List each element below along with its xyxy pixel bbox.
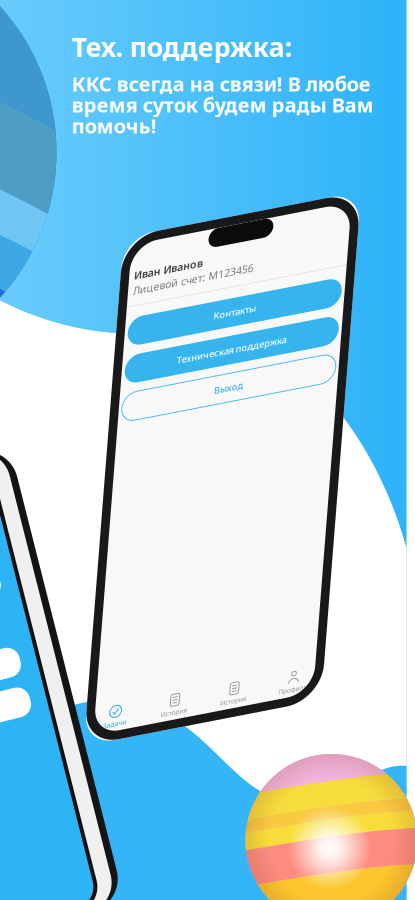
staticText: Контакты (91, 92, 134, 104)
staticText: Техническая поддержка (56, 130, 168, 142)
button[interactable]: Выход (3, 159, 221, 188)
staticText: Лицевой счет: M123456 (5, 49, 128, 63)
staticText: Иван Иванов (5, 34, 75, 48)
button[interactable]: Задачи (0, 475, 52, 498)
staticText: помочь! (71, 112, 156, 139)
staticText: ККС всегда на связи! В любое (71, 70, 370, 97)
staticText: Тех. поддержка: (71, 29, 291, 64)
button[interactable]: Контакты (3, 83, 221, 112)
staticText: Задачи (10, 489, 34, 498)
button[interactable]: Техническая поддержка (3, 121, 221, 150)
button[interactable]: История (112, 475, 173, 498)
staticText: Все заявки (18, 167, 84, 183)
staticText: время суток будем рады Вам (71, 91, 373, 118)
button[interactable]: История (52, 475, 112, 498)
